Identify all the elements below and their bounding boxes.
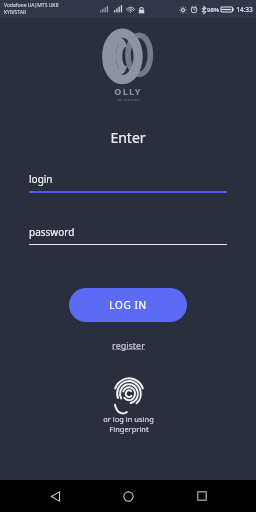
staticText: password: [29, 225, 227, 239]
staticText: Enter: [110, 128, 146, 147]
staticText: Fingerprint: [109, 424, 149, 434]
staticText: KYIVSTAR: [4, 9, 27, 16]
staticText: 98%: [207, 6, 219, 14]
staticText: 14:33: [236, 5, 253, 14]
button[interactable]: Back: [36, 480, 74, 512]
staticText: Vodafone UA|MTS UKR: [4, 2, 59, 9]
staticText: LOG IN: [109, 298, 147, 312]
button[interactable]: password: [29, 225, 227, 245]
button[interactable]: register: [106, 337, 151, 353]
button[interactable]: LOG IN: [69, 288, 187, 322]
button[interactable]: Recent apps: [183, 480, 221, 512]
button[interactable]: login: [29, 172, 227, 193]
staticText: or log in using: [103, 414, 154, 424]
button[interactable]: Log in using Fingerprint: [93, 374, 164, 436]
button[interactable]: Home: [109, 480, 147, 512]
staticText: login: [29, 172, 227, 186]
staticText: car assistant: [117, 98, 140, 102]
staticText: OLLY: [114, 85, 142, 97]
staticText: register: [112, 339, 145, 351]
